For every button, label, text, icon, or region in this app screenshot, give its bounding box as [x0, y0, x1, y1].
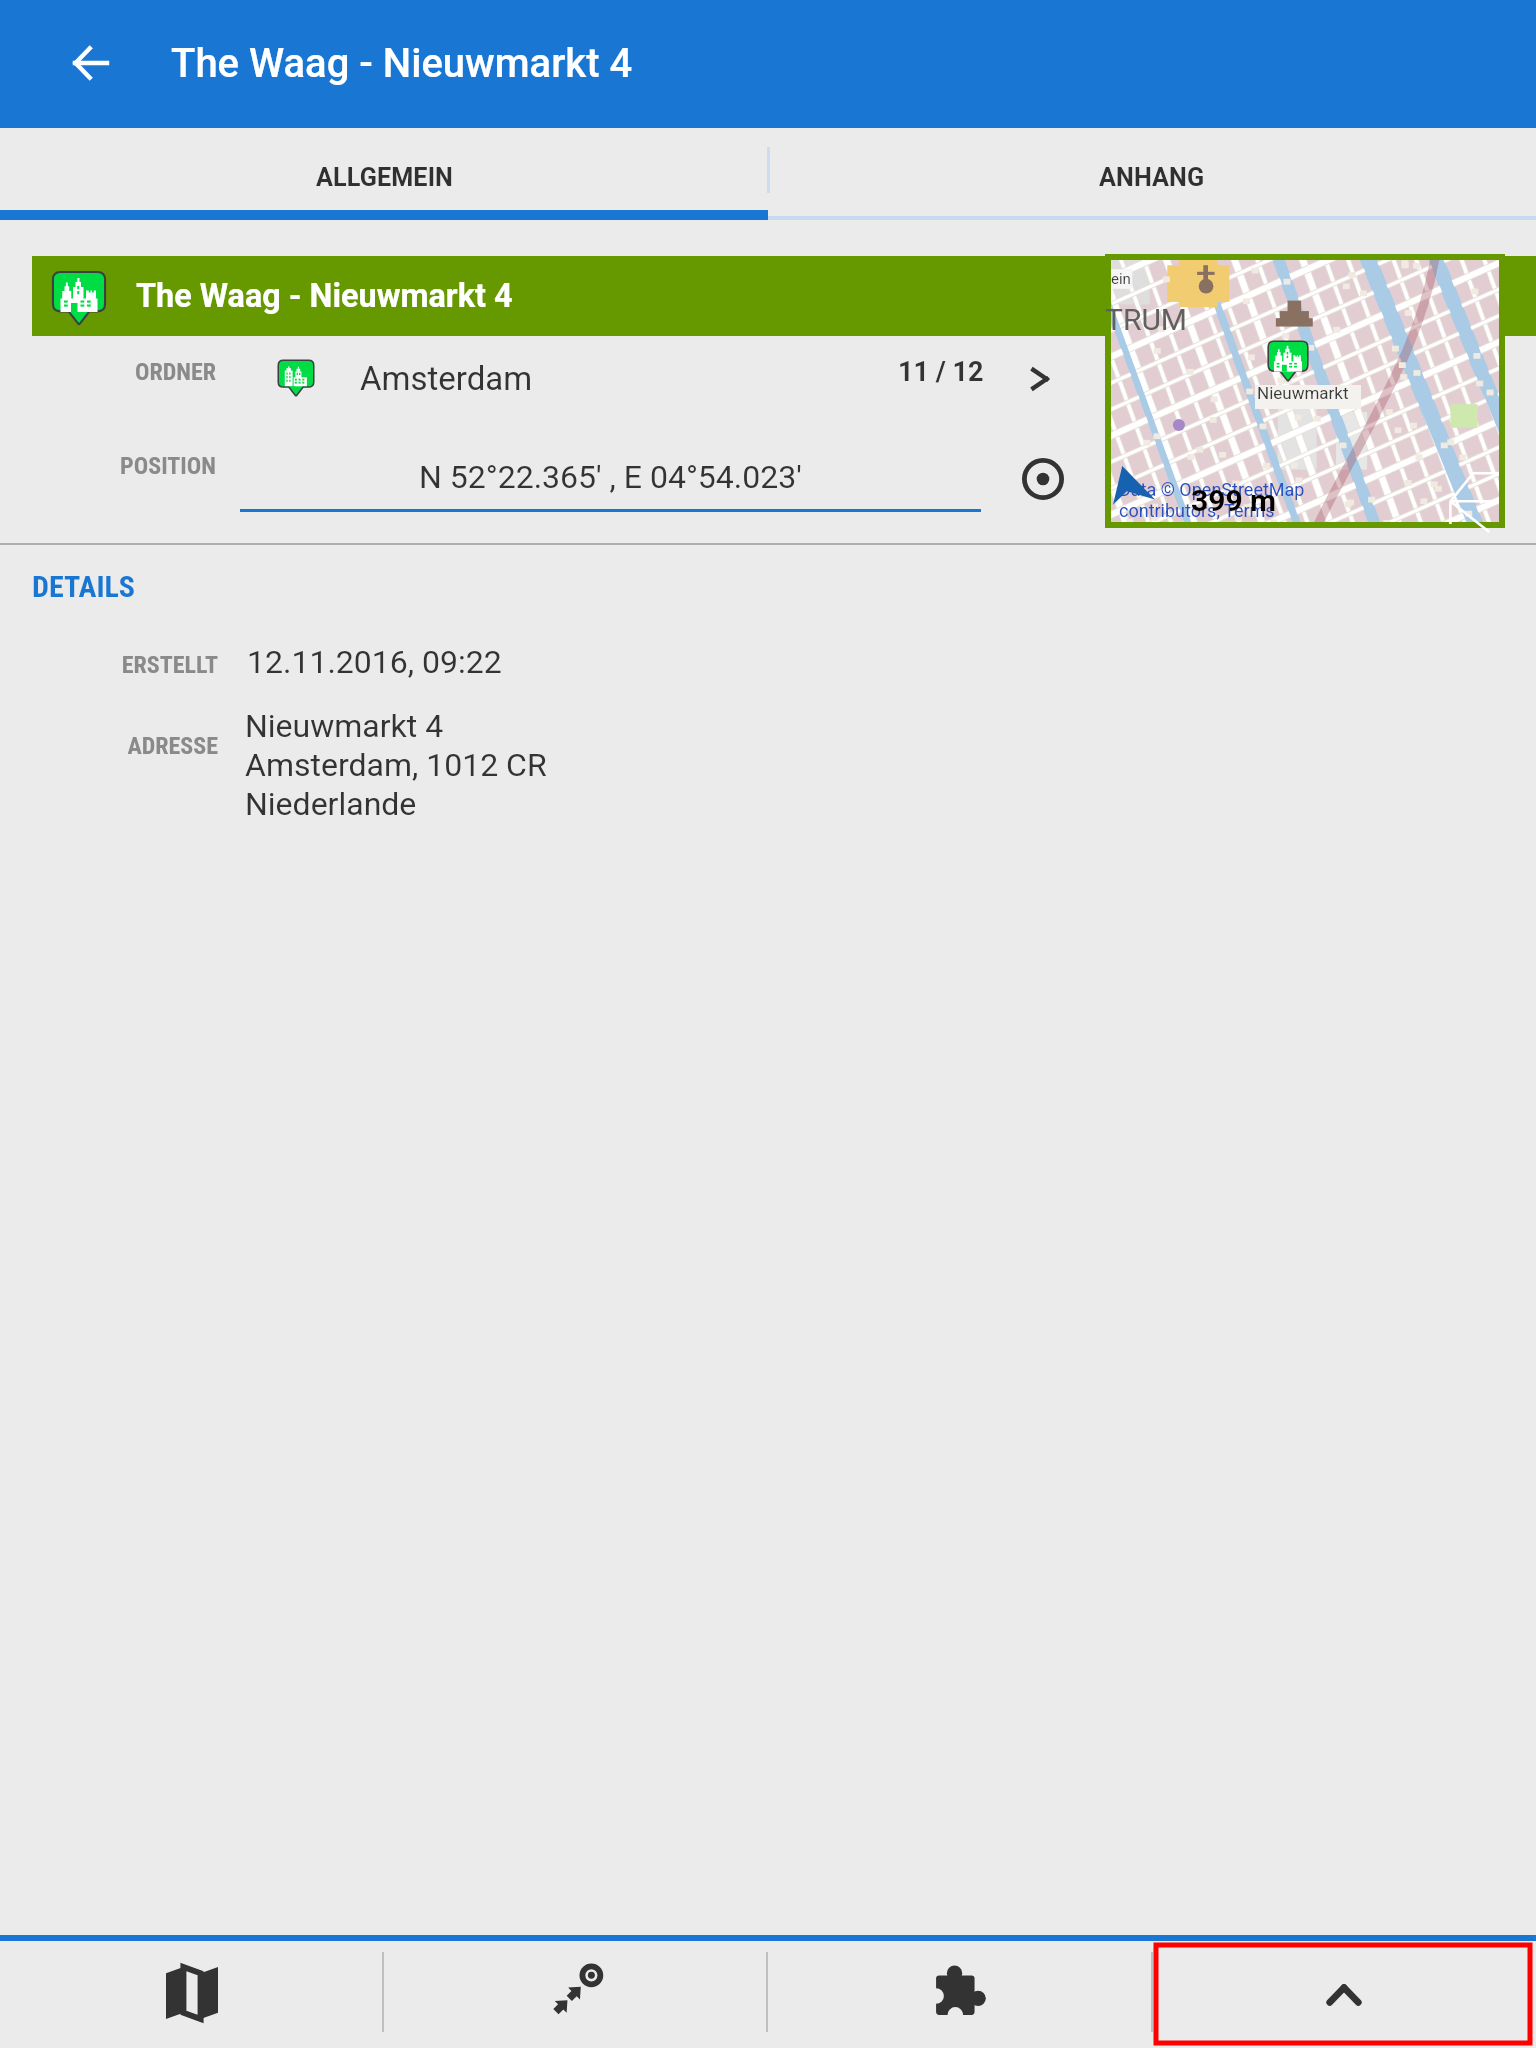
staticText: Nieuwmarkt [1257, 383, 1349, 403]
button[interactable]: Navigate [384, 1941, 768, 2048]
staticText: The Waag - Nieuwmarkt 4 [136, 277, 513, 315]
staticText: 12.11.2016, 09:22 [247, 643, 502, 681]
staticText: ANHANG [1099, 163, 1205, 193]
staticText: POSITION [0, 452, 216, 480]
staticText: ADRESSE [0, 732, 218, 760]
button[interactable]: Extensions [768, 1941, 1152, 2048]
staticText: N 52°22.365' , E 04°54.023' [419, 458, 802, 496]
staticText: ALLGEMEIN [316, 163, 453, 193]
staticText: TRUM [1105, 302, 1188, 337]
staticText: 399 m [1191, 483, 1277, 518]
button[interactable]: Amsterdam [0, 332, 1536, 424]
staticText: Data © OpenStreetMap contributors, Terms [1119, 479, 1305, 522]
staticText: Nieuwmarkt 4 Amsterdam, 1012 CR Niederla… [245, 707, 547, 822]
staticText: DETAILS [32, 569, 136, 604]
staticText: ein [1111, 270, 1131, 288]
button[interactable]: Map [0, 1941, 384, 2048]
button[interactable]: Back [35, 8, 147, 120]
button[interactable]: Use current position [1002, 438, 1084, 520]
staticText: ERSTELLT [0, 651, 218, 679]
staticText: ORDNER [0, 358, 216, 386]
button[interactable]: ALLGEMEIN [0, 128, 768, 210]
staticText: 11 / 12 [898, 356, 984, 388]
staticText: Amsterdam [360, 359, 533, 398]
button[interactable]: Map [1111, 260, 1499, 522]
staticText: The Waag - Nieuwmarkt 4 [171, 40, 633, 87]
button[interactable]: ANHANG [768, 128, 1536, 210]
button[interactable]: Expand panel [1152, 1941, 1536, 2048]
